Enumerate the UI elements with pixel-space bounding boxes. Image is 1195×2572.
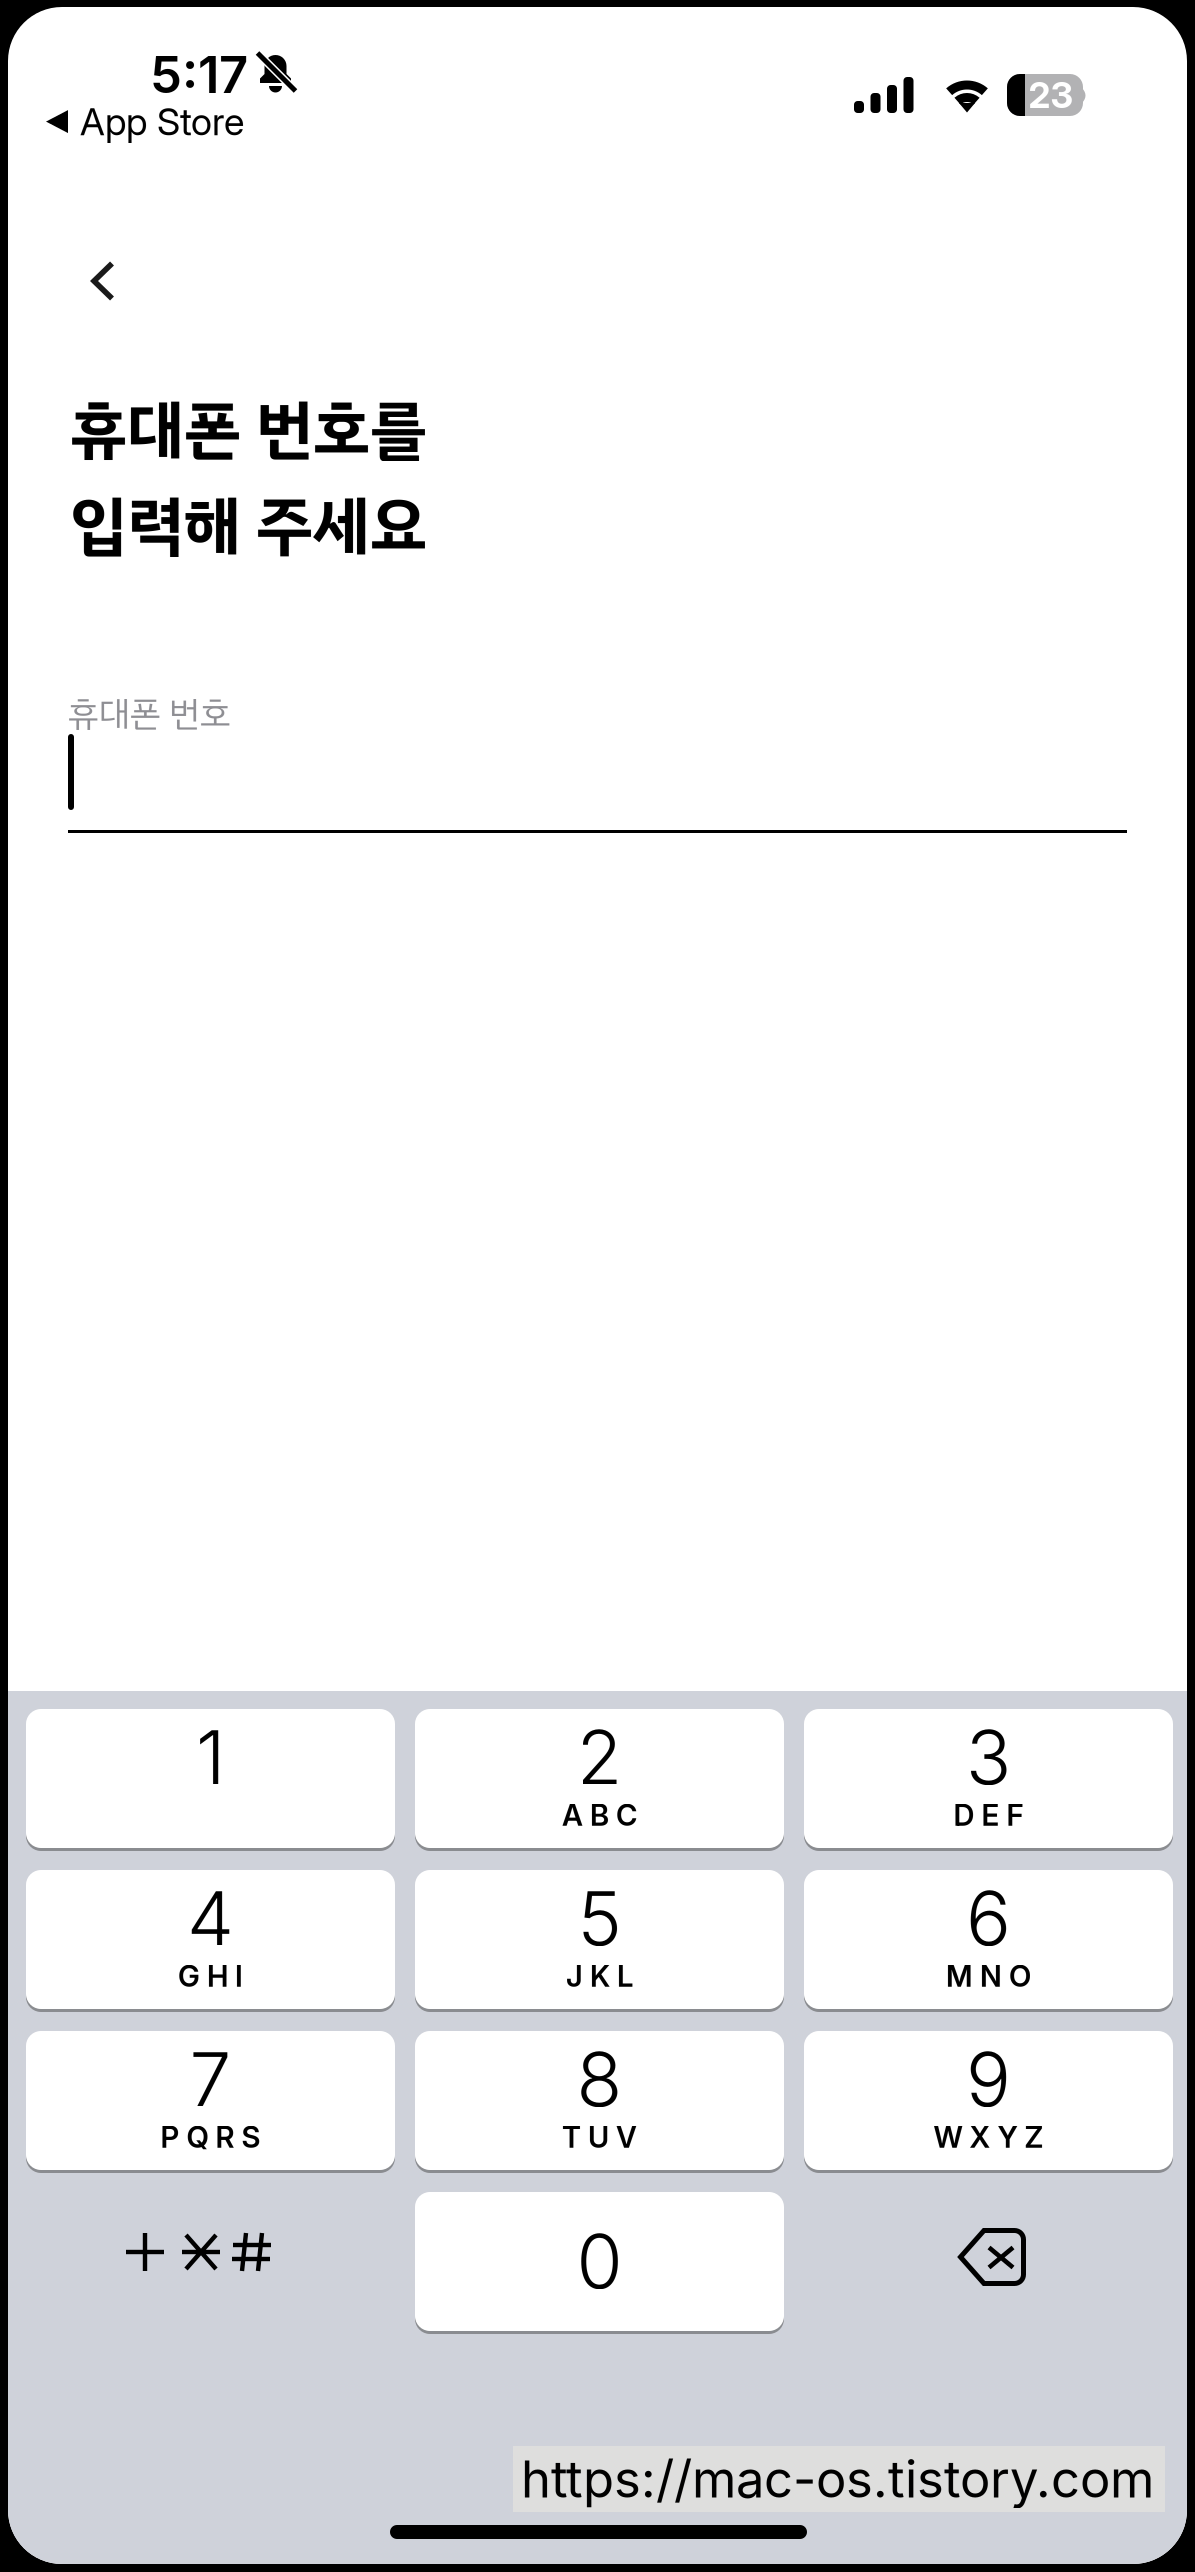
staticText: 휴대폰 번호를 [70, 382, 427, 478]
button[interactable]: 9 [804, 2031, 1173, 2173]
button[interactable]: Plus, star and pound [26, 2192, 395, 2334]
staticText: J K L [566, 1958, 633, 1994]
staticText: 7 [189, 2034, 231, 2124]
staticText: G H I [178, 1958, 243, 1994]
staticText: P Q R S [160, 2119, 260, 2155]
staticText: 8 [576, 2034, 622, 2124]
staticText: 2 [576, 1712, 622, 1802]
staticText: A B C [562, 1797, 637, 1833]
button[interactable]: 2 [415, 1709, 784, 1851]
staticText: App Store [80, 99, 244, 144]
button[interactable]: 1 [26, 1709, 395, 1851]
staticText: 0 [576, 2216, 622, 2306]
button[interactable]: 6 [804, 1870, 1173, 2012]
staticText: 3 [966, 1712, 1011, 1802]
staticText: 9 [966, 2034, 1011, 2124]
staticText: 1 [196, 1712, 225, 1802]
staticText: 4 [187, 1873, 234, 1963]
button[interactable]: Delete [804, 2192, 1173, 2334]
staticText: 23 [1028, 73, 1073, 117]
button[interactable]: 3 [804, 1709, 1173, 1851]
staticText: https://mac-os.tistory.com [521, 2448, 1154, 2510]
button[interactable]: 0 [415, 2192, 784, 2334]
staticText: 5 [577, 1873, 621, 1963]
staticText: T U V [562, 2119, 637, 2155]
button[interactable]: Back [58, 236, 148, 326]
button[interactable]: 8 [415, 2031, 784, 2173]
staticText: 휴대폰 번호 [68, 688, 231, 740]
button[interactable]: App Store [46, 99, 244, 144]
staticText: 5:17 [150, 44, 248, 105]
staticText: 입력해 주세요 [70, 478, 427, 574]
staticText: W X Y Z [933, 2119, 1043, 2155]
button[interactable]: 7 [26, 2031, 395, 2173]
staticText: D E F [953, 1797, 1023, 1833]
staticText: 6 [966, 1873, 1011, 1963]
staticText: M N O [946, 1958, 1031, 1994]
button[interactable]: 4 [26, 1870, 395, 2012]
button[interactable]: 5 [415, 1870, 784, 2012]
